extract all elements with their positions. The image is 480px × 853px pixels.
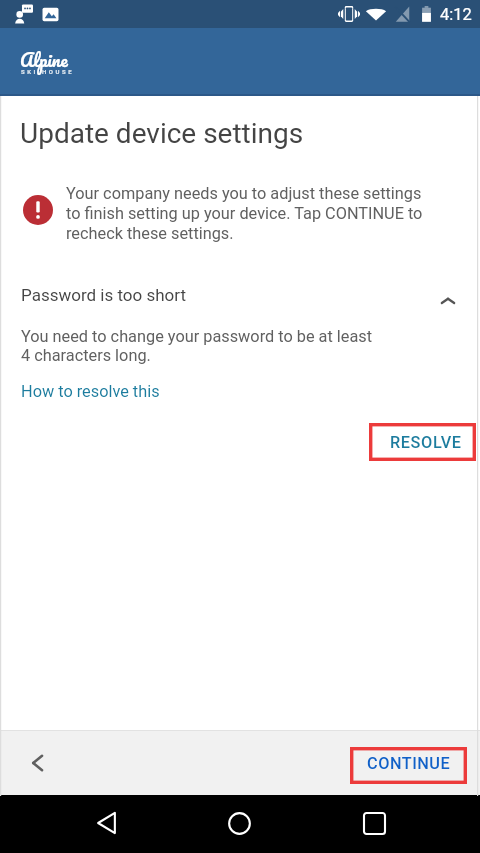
button[interactable]: Password is too short <box>0 276 480 316</box>
staticText: Password is too short <box>21 285 187 305</box>
button[interactable]: How to resolve this <box>21 382 160 401</box>
staticText: CONTINUE <box>367 754 451 773</box>
button[interactable]: RESOLVE <box>372 423 479 461</box>
button[interactable]: CONTINUE <box>350 745 467 782</box>
button[interactable]: Back <box>21 746 55 780</box>
other: Collapse <box>437 290 459 312</box>
staticText: Your company needs you to adjust these s… <box>66 184 424 243</box>
staticText: SKI HOUSE <box>21 68 75 75</box>
staticText: RESOLVE <box>390 433 462 452</box>
staticText: You need to change your password to be a… <box>21 327 381 365</box>
button[interactable]: Back <box>84 801 128 845</box>
staticText: Alpine <box>20 44 68 74</box>
staticText: 4:12 <box>440 5 472 24</box>
staticText: Update device settings <box>20 117 304 150</box>
button[interactable]: Home <box>217 801 261 845</box>
button[interactable]: Recent apps <box>352 801 396 845</box>
